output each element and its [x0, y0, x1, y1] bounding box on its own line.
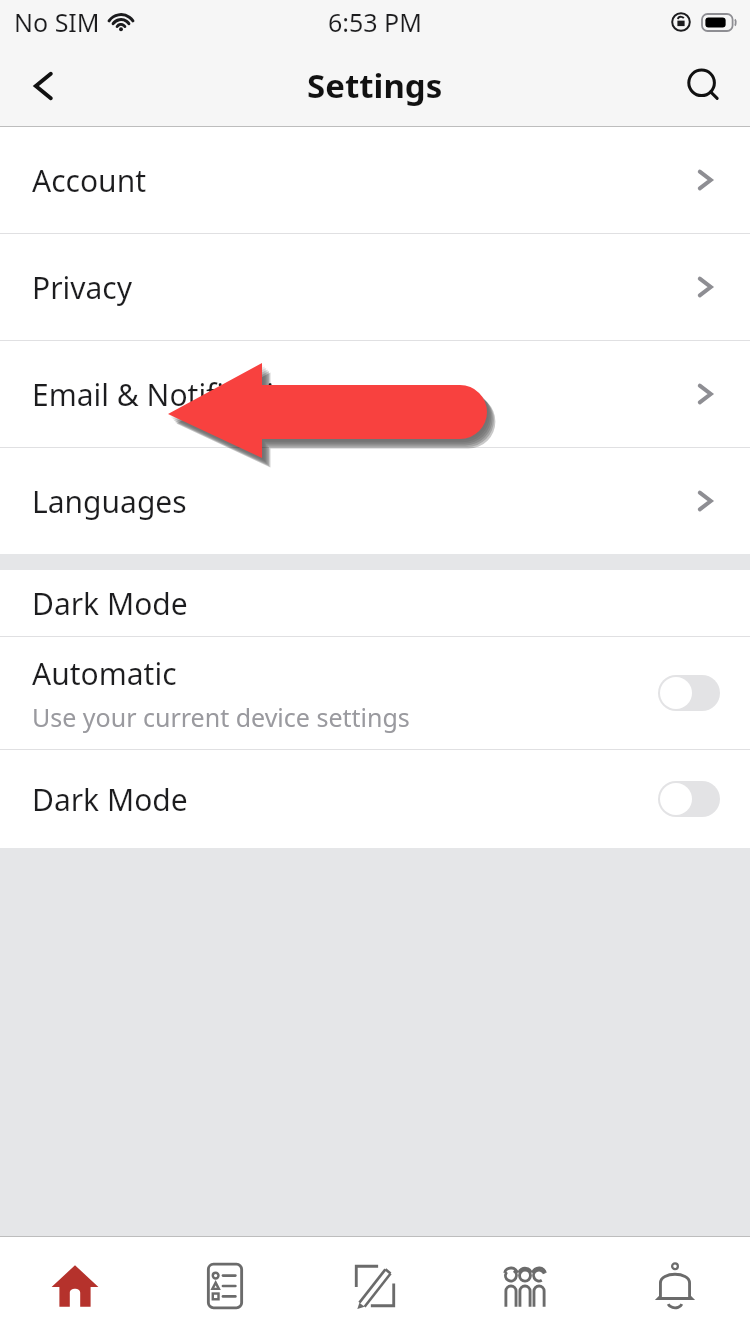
button[interactable]: Search — [658, 44, 750, 127]
button[interactable]: Dark Mode toggle — [658, 781, 720, 817]
staticText: 6:53 PM — [328, 5, 422, 39]
staticText: Account — [32, 160, 147, 201]
staticText: Languages — [32, 481, 187, 522]
staticText: Automatic — [32, 653, 177, 694]
button[interactable]: Dark Mode — [0, 750, 750, 848]
staticText: Settings — [307, 63, 443, 108]
staticText: Use your current device settings — [32, 700, 410, 734]
staticText: Privacy — [32, 267, 133, 308]
button[interactable]: Home — [0, 1237, 150, 1334]
button[interactable]: Notifications — [600, 1237, 750, 1334]
button[interactable]: Account — [0, 127, 750, 233]
button[interactable]: Lists — [150, 1237, 300, 1334]
button[interactable]: Privacy — [0, 234, 750, 340]
staticText: No SIM — [14, 5, 100, 39]
staticText: Dark Mode — [32, 583, 188, 624]
button[interactable]: Automatic — [0, 637, 750, 749]
staticText: Dark Mode — [32, 779, 188, 820]
button[interactable]: Email & Notifications — [0, 341, 750, 447]
button[interactable]: Compose — [300, 1237, 450, 1334]
button[interactable]: Automatic toggle — [658, 675, 720, 711]
staticText: Email & Notifications — [32, 374, 326, 415]
button[interactable]: Languages — [0, 448, 750, 554]
button[interactable]: Back — [0, 44, 88, 127]
button[interactable]: Groups — [450, 1237, 600, 1334]
